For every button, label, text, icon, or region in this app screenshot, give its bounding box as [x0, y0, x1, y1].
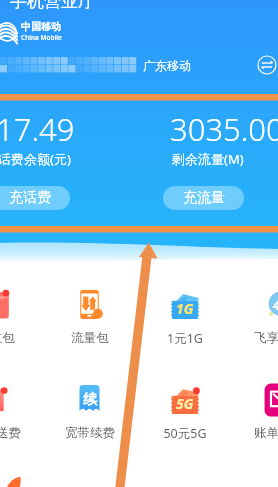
staticText: 1G — [176, 299, 194, 318]
button[interactable]: Switch account — [257, 55, 277, 75]
staticText: 4G — [273, 295, 278, 314]
staticText: China Mobile — [21, 33, 62, 42]
staticText: 剩余流量(M) — [172, 150, 244, 168]
staticText: 抢红包 — [0, 330, 15, 346]
staticText: 宽带续费 — [65, 425, 115, 441]
button[interactable]: 续 — [50, 385, 130, 443]
staticText: 充流量 — [183, 189, 225, 207]
staticText: 1元1G — [167, 330, 203, 347]
staticText: 飞享套餐 — [254, 330, 278, 346]
button[interactable]: 充值送费 — [0, 385, 36, 443]
button[interactable]: 充话费 — [0, 186, 70, 210]
button[interactable]: 流量包 — [50, 290, 130, 348]
staticText: 中国移动 — [21, 20, 61, 33]
staticText: 17.49 — [0, 108, 75, 150]
button[interactable]: 充流量 — [163, 186, 244, 210]
staticText: 话费余额(元) — [0, 150, 71, 168]
staticText: 50元5G — [163, 425, 207, 442]
staticText: 5G — [176, 394, 194, 413]
staticText: 手机营业厅 — [10, 0, 95, 12]
staticText: 3035.00 — [170, 108, 278, 150]
staticText: 充值送费 — [0, 425, 21, 441]
button[interactable]: 1G — [145, 290, 225, 348]
staticText: 续 — [83, 391, 97, 409]
staticText: 充话费 — [9, 189, 51, 207]
staticText: 账单查询 — [254, 425, 278, 441]
staticText: 流量包 — [71, 330, 109, 346]
button[interactable]: 5G — [145, 385, 225, 443]
button[interactable]: 账单查询 — [239, 385, 278, 443]
staticText: 广东移动 — [143, 58, 191, 73]
button[interactable]: 抢红包 — [0, 290, 36, 348]
button[interactable]: 4G — [239, 290, 278, 348]
